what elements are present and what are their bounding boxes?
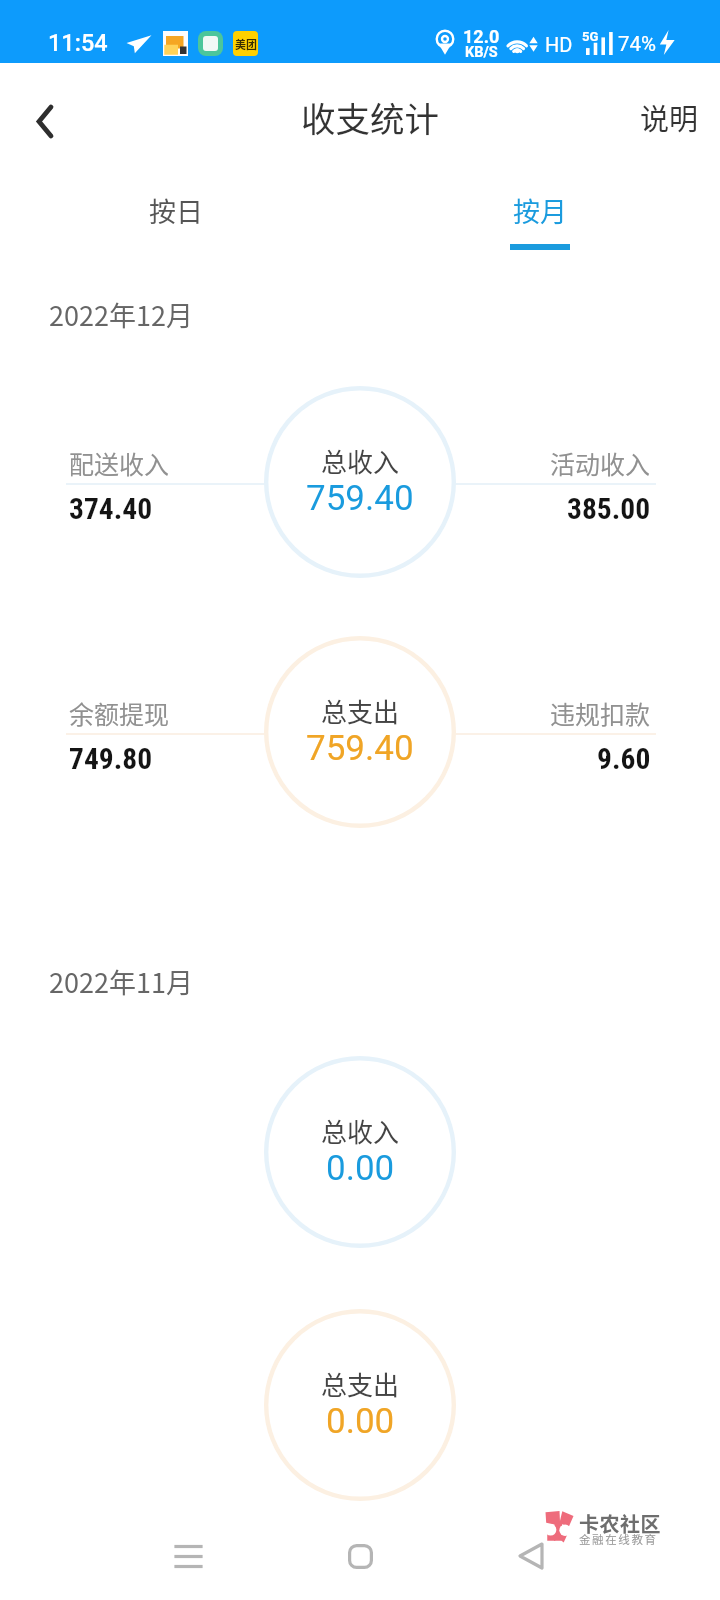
staticText: 总支出 — [321, 1365, 400, 1403]
staticText: 749.80 — [69, 742, 153, 777]
staticText: HD — [545, 33, 573, 56]
staticText: 5G — [582, 29, 599, 44]
button[interactable]: Back — [0, 70, 90, 170]
staticText: 卡农社区 — [579, 1509, 661, 1538]
button[interactable]: 按月 — [450, 165, 630, 255]
staticText: 配送收入 — [69, 445, 170, 481]
staticText: 违规扣款 — [550, 695, 651, 731]
staticText: 按月 — [513, 191, 567, 230]
staticText: 12.0 — [463, 26, 500, 47]
staticText: KB/S — [465, 44, 498, 61]
staticText: 活动收入 — [550, 445, 651, 481]
button[interactable]: Home — [329, 1525, 391, 1587]
staticText: 说明 — [640, 96, 699, 138]
staticText: 按日 — [149, 191, 203, 230]
staticText: 374.40 — [69, 492, 153, 527]
staticText: 74% — [618, 32, 657, 56]
staticText: 余额提现 — [69, 695, 170, 731]
button[interactable]: 说明 — [610, 70, 720, 170]
staticText: 收支统计 — [301, 92, 439, 142]
button[interactable]: 总支出 — [264, 1309, 456, 1501]
staticText: 总收入 — [321, 1112, 400, 1150]
button[interactable]: 按日 — [86, 165, 266, 255]
staticText: 11:54 — [48, 29, 108, 57]
staticText: 总支出 — [321, 692, 400, 730]
staticText: 759.40 — [306, 478, 414, 519]
button[interactable]: 总收入 — [264, 1056, 456, 1248]
button[interactable]: Back — [500, 1525, 562, 1587]
staticText: 美团 — [235, 36, 257, 52]
staticText: 金融在线教育 — [579, 1531, 658, 1548]
button[interactable]: Recent apps — [157, 1525, 219, 1587]
staticText: 2022年12月 — [49, 295, 193, 334]
button[interactable]: 总支出 — [264, 636, 456, 828]
staticText: 9.60 — [597, 742, 651, 777]
staticText: 0.00 — [326, 1401, 395, 1442]
button[interactable]: 总收入 — [264, 386, 456, 578]
staticText: 759.40 — [306, 728, 414, 769]
staticText: 总收入 — [321, 442, 400, 480]
staticText: 2022年11月 — [49, 962, 193, 1001]
staticText: 0.00 — [326, 1148, 395, 1189]
staticText: 385.00 — [567, 492, 651, 527]
